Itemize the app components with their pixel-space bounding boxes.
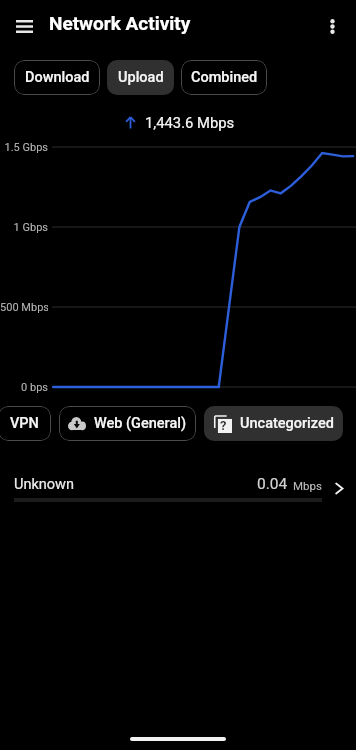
staticText: Download bbox=[25, 69, 90, 86]
staticText: Upload bbox=[118, 69, 164, 86]
staticText: 1.5 Gbps bbox=[4, 141, 48, 154]
button[interactable]: More options bbox=[312, 6, 352, 46]
staticText: ? bbox=[220, 418, 227, 433]
button[interactable]: ? bbox=[204, 406, 343, 441]
staticText: Web (General) bbox=[94, 415, 187, 432]
button[interactable]: Unknown bbox=[0, 464, 356, 512]
button[interactable]: Upload bbox=[107, 60, 174, 95]
staticText: 1 Gbps bbox=[13, 221, 48, 234]
button[interactable]: VPN bbox=[0, 406, 51, 441]
staticText: 0.04 bbox=[257, 475, 288, 493]
staticText: 0 bps bbox=[21, 381, 48, 394]
staticText: 1,443.6 Mbps bbox=[145, 114, 235, 131]
staticText: Network Activity bbox=[49, 12, 191, 34]
staticText: VPN bbox=[10, 415, 39, 432]
button[interactable]: Combined bbox=[181, 60, 267, 95]
staticText: 500 Mbps bbox=[0, 301, 48, 314]
staticText: Mbps bbox=[293, 479, 322, 492]
button[interactable]: Download bbox=[14, 60, 100, 95]
staticText: Uncategorized bbox=[240, 415, 334, 432]
button[interactable]: Open navigation menu bbox=[4, 5, 44, 45]
button[interactable]: Web (General) bbox=[59, 406, 196, 441]
staticText: Unknown bbox=[14, 476, 74, 493]
staticText: Combined bbox=[191, 69, 258, 86]
